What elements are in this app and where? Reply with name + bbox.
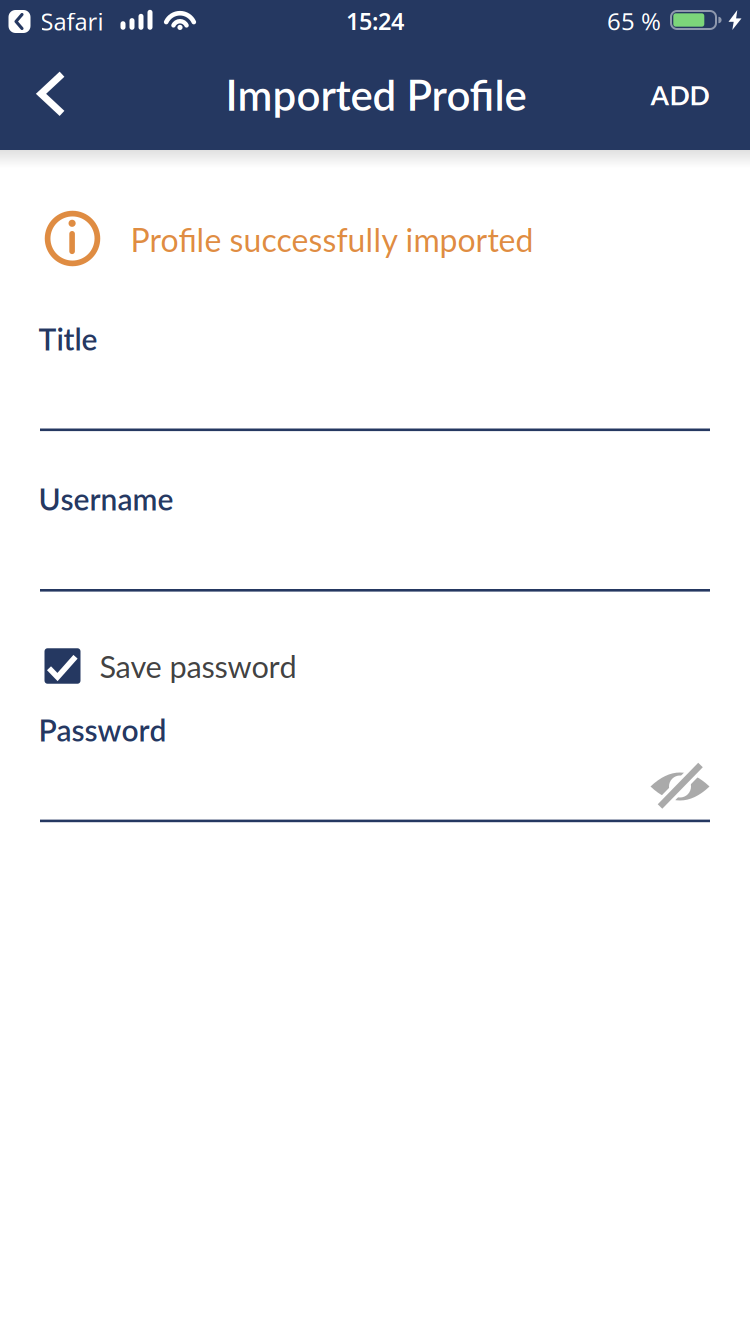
staticText: ADD [650, 79, 709, 111]
staticText: 15:24 [346, 5, 404, 37]
staticText: Imported Profile [225, 69, 526, 120]
staticText: Username [38, 481, 173, 517]
button[interactable]: Back [36, 71, 66, 117]
staticText: Safari [40, 5, 103, 37]
staticText: Title [38, 321, 97, 357]
staticText: Save password [99, 648, 296, 684]
button[interactable]: Show password [648, 761, 712, 811]
staticText: Profile successfully imported [130, 220, 533, 259]
button[interactable]: ADD [650, 79, 709, 111]
button[interactable]: Back to Safari [8, 5, 103, 37]
staticText: 65 % [607, 5, 661, 37]
button[interactable]: Save password [44, 648, 296, 684]
staticText: Password [38, 712, 166, 748]
